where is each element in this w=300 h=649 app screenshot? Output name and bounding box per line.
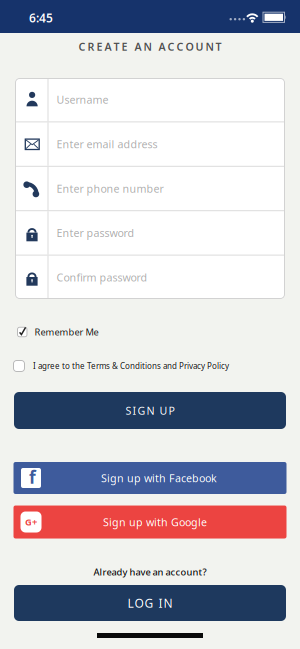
button[interactable]: G+: [13, 505, 286, 538]
button[interactable]: Confirm password: [15, 256, 285, 299]
staticText: Enter password: [56, 226, 134, 240]
button[interactable]: Enter password: [15, 211, 285, 255]
staticText: Enter phone number: [56, 181, 163, 196]
button[interactable]: Enter phone number: [15, 167, 285, 210]
staticText: Enter email address: [56, 137, 157, 151]
staticText: Sign up with Facebook: [101, 471, 217, 485]
staticText: 6:45: [29, 10, 53, 26]
staticText: Username: [56, 93, 108, 107]
button[interactable]: S I G N U P: [14, 392, 286, 429]
staticText: I agree to the Terms & Conditions and Pr…: [33, 361, 229, 371]
staticText: L O G I N: [127, 595, 172, 611]
button[interactable]: L O G I N: [14, 585, 286, 621]
button[interactable]: Enter email address: [15, 122, 285, 166]
button[interactable]: Remember Me: [0, 326, 300, 338]
staticText: Remember Me: [34, 326, 98, 338]
button[interactable]: I agree to the Terms & Conditions and Pr…: [0, 360, 300, 372]
staticText: S I G N U P: [125, 403, 174, 418]
staticText: Sign up with Google: [103, 515, 207, 529]
button[interactable]: Username: [15, 78, 285, 121]
staticText: Already have an account?: [93, 566, 206, 578]
staticText: C R E A T E A N A C C O U N T: [78, 39, 221, 54]
staticText: f: [29, 465, 36, 488]
staticText: G+: [25, 516, 37, 528]
button[interactable]: f: [13, 462, 286, 494]
staticText: Confirm password: [56, 270, 147, 284]
